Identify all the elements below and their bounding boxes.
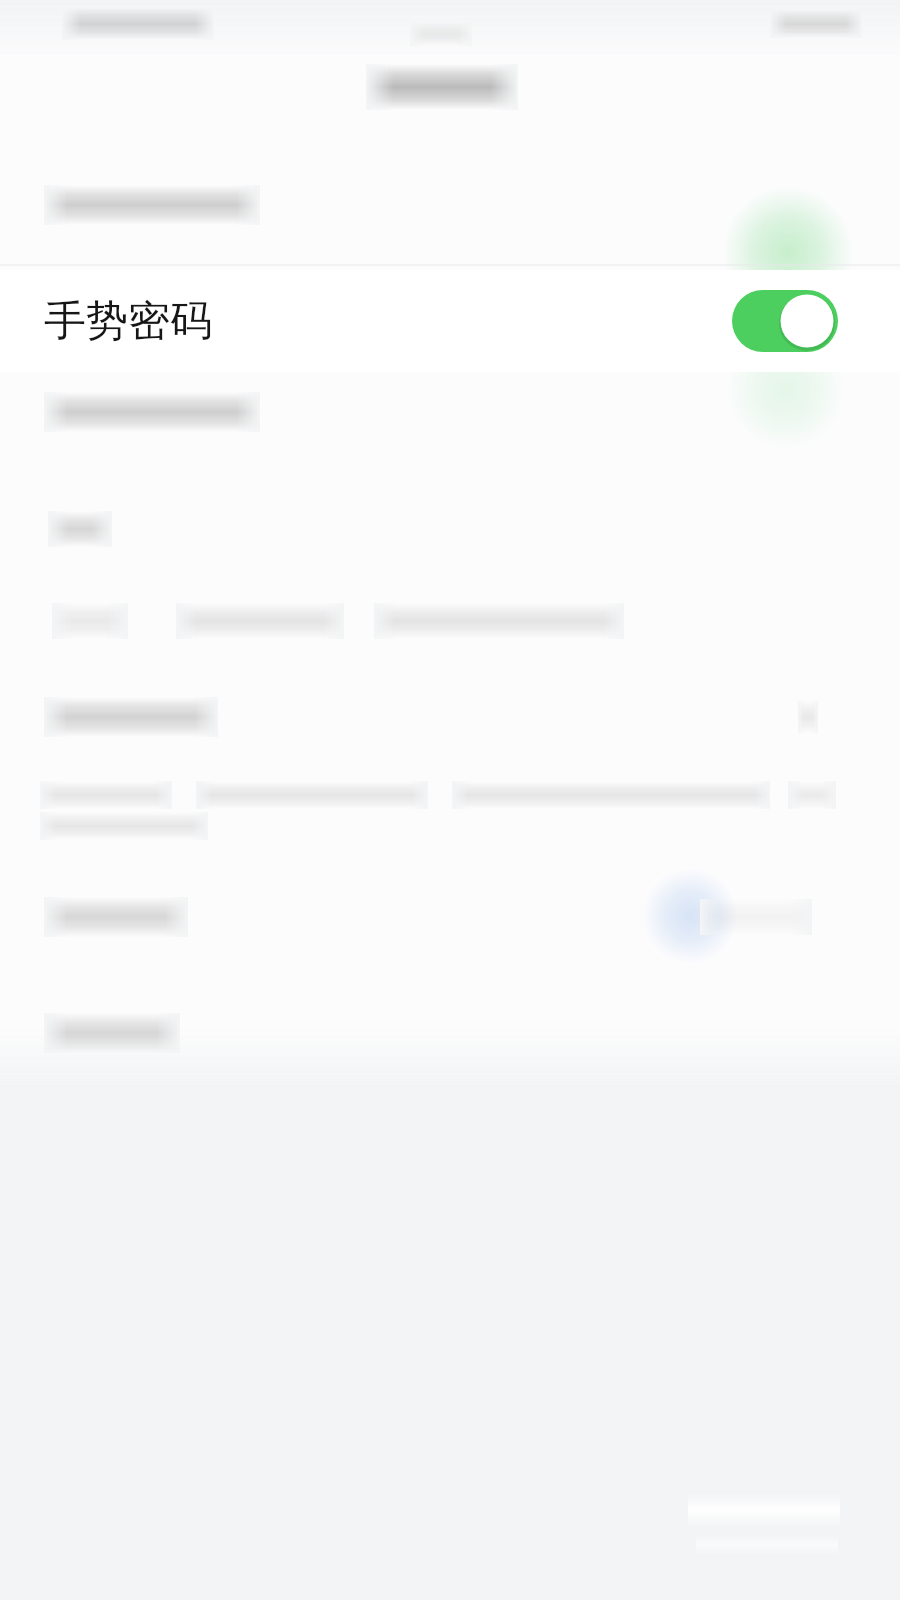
button[interactable]: 手势密码 bbox=[0, 270, 900, 372]
button[interactable]: Gesture password switch, on bbox=[732, 290, 838, 352]
staticText: 手势密码 bbox=[44, 295, 212, 348]
